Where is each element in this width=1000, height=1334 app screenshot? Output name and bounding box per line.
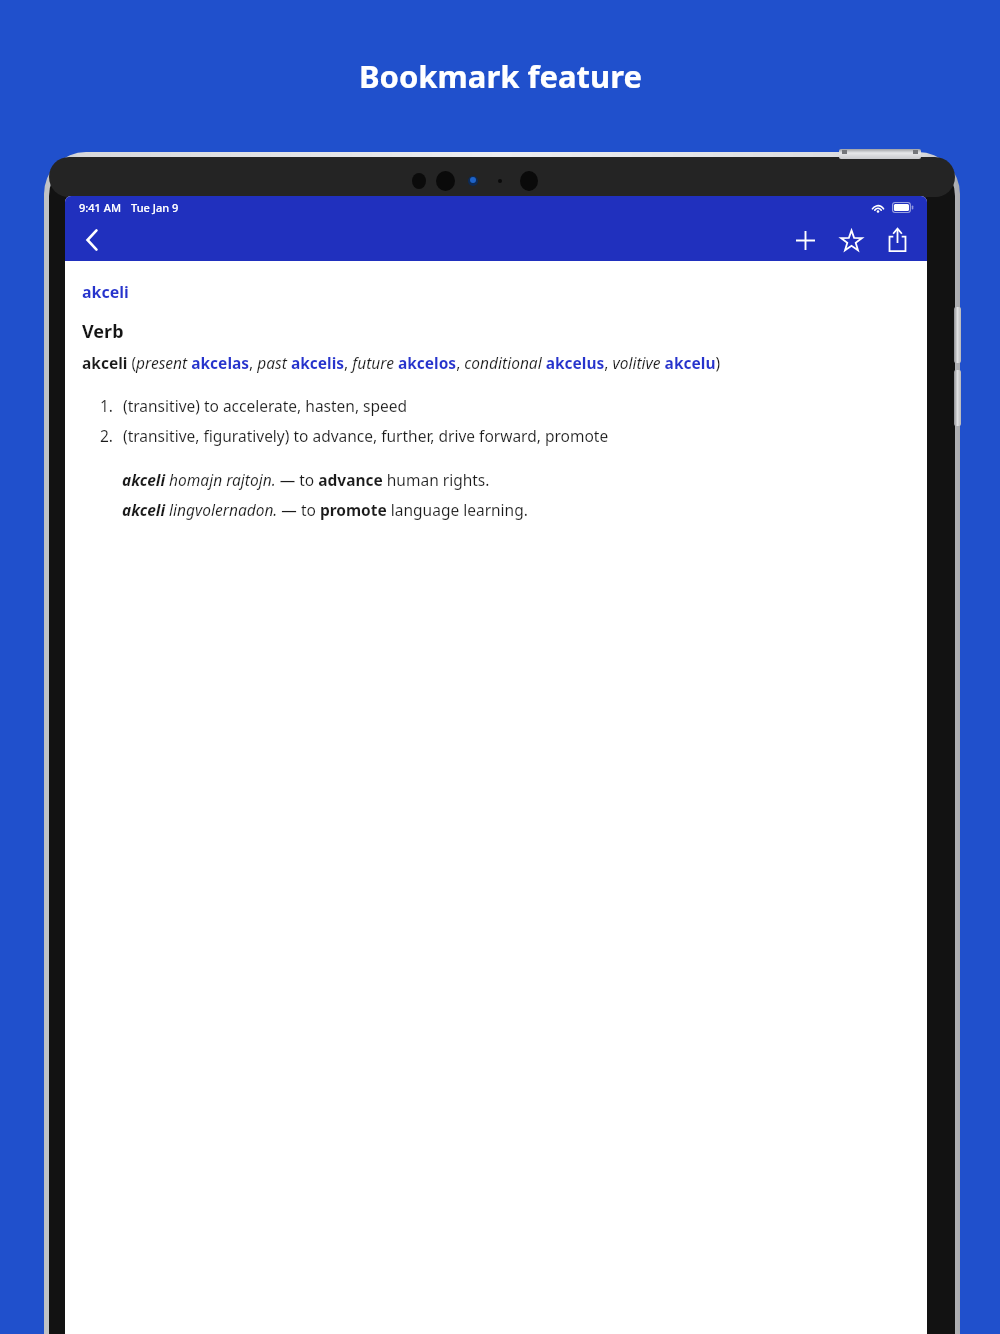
staticText: akceli homajn rajtojn. — to advance huma… [122, 469, 490, 490]
staticText: Bookmark feature [359, 55, 642, 97]
staticText: akceli lingvolernadon. — to promote lang… [122, 499, 528, 520]
staticText: akceli (present akcelas, past akcelis, f… [82, 352, 721, 373]
staticText: 2. [100, 425, 114, 446]
button[interactable]: Share [877, 220, 917, 260]
button[interactable]: akceli [82, 281, 129, 303]
staticText: 9:41 AM [79, 200, 122, 215]
staticText: 1. [100, 395, 114, 416]
staticText: (transitive, figuratively) to advance, f… [123, 425, 609, 446]
staticText: Verb [82, 319, 124, 344]
staticText: Tue Jan 9 [131, 200, 179, 215]
button[interactable]: Back [71, 219, 113, 261]
button[interactable]: Bookmark [831, 220, 871, 260]
button[interactable]: Add [785, 220, 825, 260]
staticText: (transitive) to accelerate, hasten, spee… [123, 395, 408, 416]
